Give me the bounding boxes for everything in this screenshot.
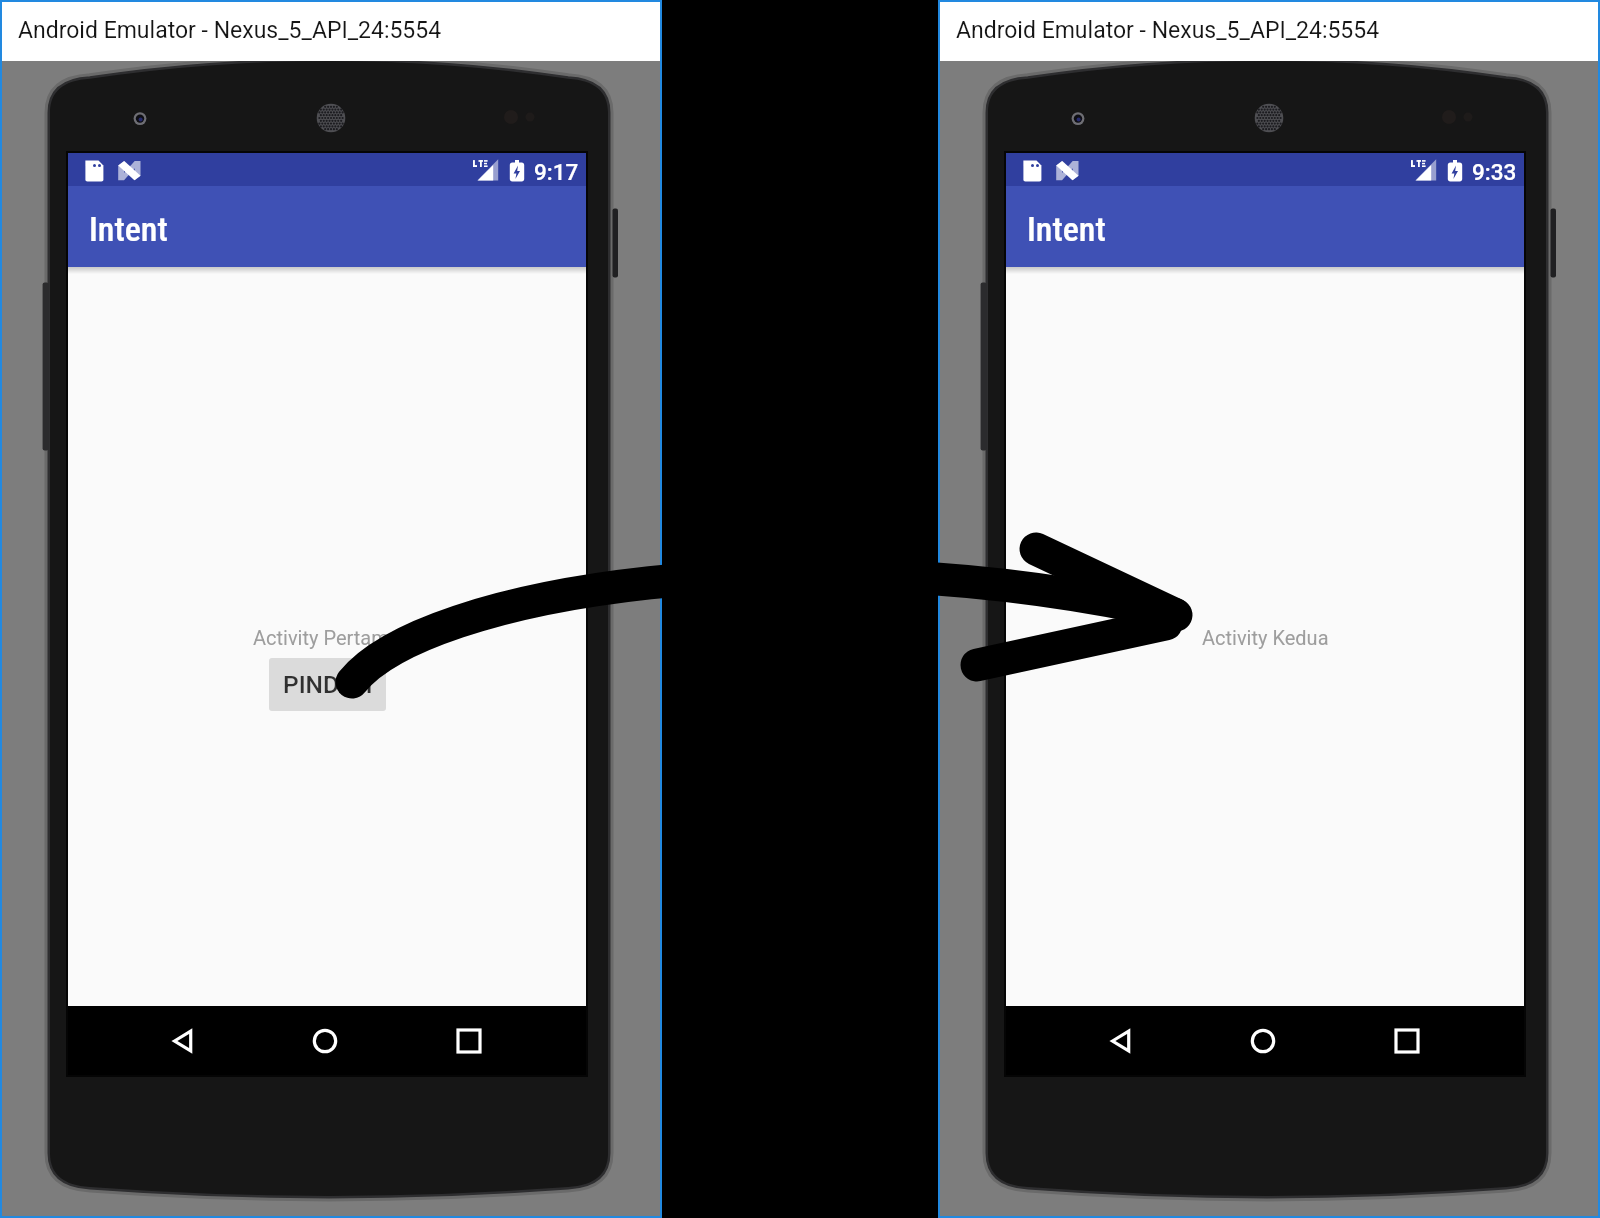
button[interactable]: Recents [1373,1006,1441,1075]
button[interactable]: Home [291,1006,359,1075]
staticText: Activity Pertama [253,626,400,649]
staticText: PINDAH [283,670,373,699]
staticText: Android Emulator - Nexus_5_API_24:5554 [956,17,1380,44]
button[interactable]: Home [1229,1006,1297,1075]
button[interactable]: Recents [435,1006,503,1075]
staticText: Intent [1027,209,1106,249]
staticText: 9:33 [1472,159,1517,185]
button[interactable]: Back [1089,1006,1157,1075]
button[interactable]: Back [151,1006,219,1075]
button[interactable]: PINDAH [269,658,386,711]
staticText: Intent [89,209,168,249]
staticText: Android Emulator - Nexus_5_API_24:5554 [18,17,442,44]
staticText: 9:17 [534,159,579,185]
staticText: Activity Kedua [1202,626,1329,649]
